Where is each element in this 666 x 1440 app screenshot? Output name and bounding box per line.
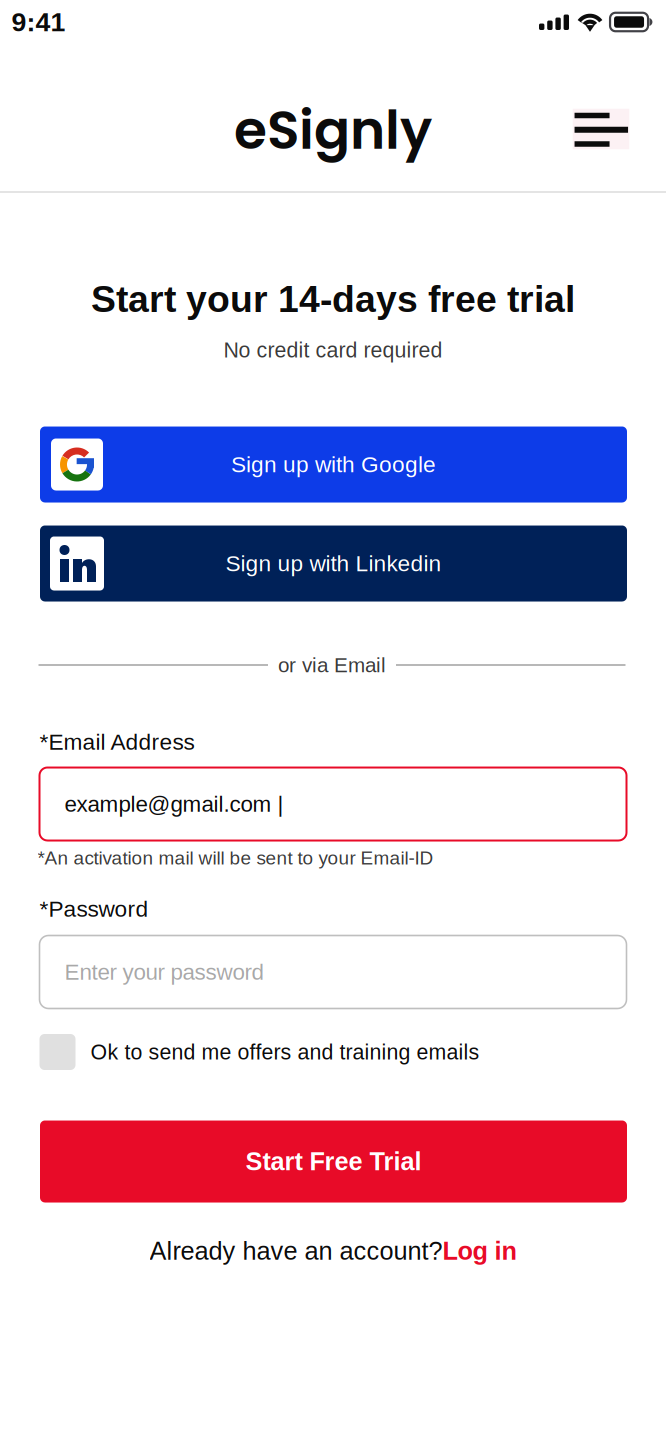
staticText: 9:41 [11, 7, 65, 37]
staticText: *Password [39, 896, 148, 922]
staticText: Sign up with Linkedin [225, 551, 441, 576]
button[interactable]: Start Free Trial [40, 1120, 627, 1202]
staticText: *Email Address [39, 729, 194, 755]
button[interactable]: Menu [573, 109, 629, 149]
staticText: Ok to send me offers and training emails [90, 1040, 479, 1064]
button[interactable]: Sign up with Google [40, 426, 627, 502]
staticText: eSignly [234, 93, 432, 167]
button[interactable]: Ok to send me offers and training emails [39, 1032, 626, 1072]
staticText: Log in [442, 1237, 516, 1265]
staticText: No credit card required [223, 338, 442, 362]
staticText: Start your 14-days free trial [91, 278, 575, 320]
staticText: or via Email [278, 653, 386, 677]
button[interactable]: Log in [442, 1237, 516, 1265]
staticText: *An activation mail will be sent to your… [37, 847, 433, 869]
staticText: Sign up with Google [231, 452, 436, 477]
staticText: Already have an account? [149, 1237, 442, 1265]
staticText: Start Free Trial [245, 1147, 421, 1176]
staticText: Enter your password [64, 959, 263, 984]
staticText: example@gmail.com | [64, 791, 283, 816]
button[interactable]: Sign up with Linkedin [40, 525, 627, 601]
